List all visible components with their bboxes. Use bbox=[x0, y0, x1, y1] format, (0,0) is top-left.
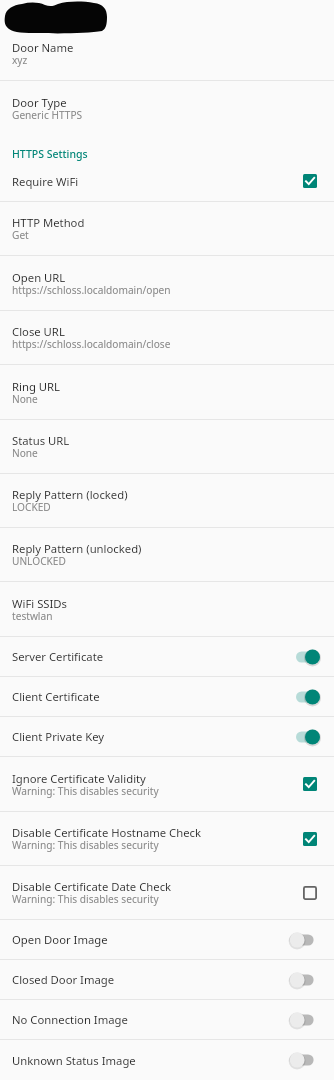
button[interactable]: Ring URL bbox=[0, 365, 334, 419]
button[interactable]: Door Name bbox=[0, 26, 334, 80]
staticText: None bbox=[12, 446, 38, 460]
staticText: Warning: This disables security bbox=[12, 838, 159, 852]
button[interactable]: WiFi SSIDs bbox=[0, 582, 334, 636]
staticText: Disable Certificate Hostname Check bbox=[12, 825, 202, 840]
button[interactable]: Client Private Key bbox=[0, 717, 334, 756]
button[interactable]: HTTP Method bbox=[0, 202, 334, 255]
staticText: Client Certificate bbox=[12, 689, 282, 704]
staticText: Warning: This disables security bbox=[12, 892, 159, 906]
staticText: Generic HTTPS bbox=[12, 108, 83, 122]
button[interactable]: Door Type bbox=[0, 81, 334, 135]
button[interactable]: Reply Pattern (locked) bbox=[0, 474, 334, 527]
staticText: Door Type bbox=[12, 95, 67, 110]
staticText: Open URL bbox=[12, 270, 66, 285]
staticText: https://schloss.localdomain/close bbox=[12, 337, 171, 351]
staticText: Client Private Key bbox=[12, 729, 282, 744]
staticText: LOCKED bbox=[12, 500, 51, 514]
button[interactable]: Server Certificate bbox=[0, 637, 334, 676]
staticText: Closed Door Image bbox=[12, 972, 282, 987]
button[interactable]: Unknown Status Image bbox=[0, 1040, 334, 1080]
staticText: HTTP Method bbox=[12, 215, 85, 230]
staticText: UNLOCKED bbox=[12, 554, 66, 568]
staticText: WiFi SSIDs bbox=[12, 596, 68, 611]
staticText: Ring URL bbox=[12, 379, 61, 394]
staticText: Close URL bbox=[12, 324, 65, 339]
staticText: HTTPS Settings bbox=[12, 147, 88, 161]
staticText: Reply Pattern (unlocked) bbox=[12, 541, 142, 556]
button[interactable]: Require WiFi bbox=[0, 167, 334, 201]
staticText: Status URL bbox=[12, 433, 70, 448]
button[interactable]: Open Door Image bbox=[0, 920, 334, 959]
staticText: No Connection Image bbox=[12, 1012, 282, 1027]
staticText: Unknown Status Image bbox=[12, 1053, 282, 1068]
staticText: https://schloss.localdomain/open bbox=[12, 283, 171, 297]
button[interactable]: Reply Pattern (unlocked) bbox=[0, 528, 334, 581]
button[interactable]: Disable Certificate Date Check bbox=[0, 866, 334, 919]
staticText: xyz bbox=[12, 53, 28, 67]
button[interactable]: No Connection Image bbox=[0, 1000, 334, 1039]
staticText: None bbox=[12, 392, 38, 406]
staticText: Disable Certificate Date Check bbox=[12, 879, 172, 894]
button[interactable]: Client Certificate bbox=[0, 677, 334, 716]
staticText: Warning: This disables security bbox=[12, 784, 159, 798]
button[interactable]: Open URL bbox=[0, 256, 334, 310]
button[interactable]: Status URL bbox=[0, 420, 334, 473]
staticText: Door Name bbox=[12, 40, 74, 55]
button[interactable]: Ignore Certificate Validity bbox=[0, 757, 334, 811]
staticText: Ignore Certificate Validity bbox=[12, 771, 146, 786]
staticText: Server Certificate bbox=[12, 649, 282, 664]
staticText: Get bbox=[12, 228, 29, 242]
staticText: Reply Pattern (locked) bbox=[12, 487, 128, 502]
button[interactable]: Closed Door Image bbox=[0, 960, 334, 999]
staticText: testwlan bbox=[12, 609, 53, 623]
button[interactable]: Close URL bbox=[0, 311, 334, 364]
staticText: Open Door Image bbox=[12, 932, 282, 947]
button[interactable]: Disable Certificate Hostname Check bbox=[0, 812, 334, 865]
staticText: Require WiFi bbox=[12, 174, 297, 189]
